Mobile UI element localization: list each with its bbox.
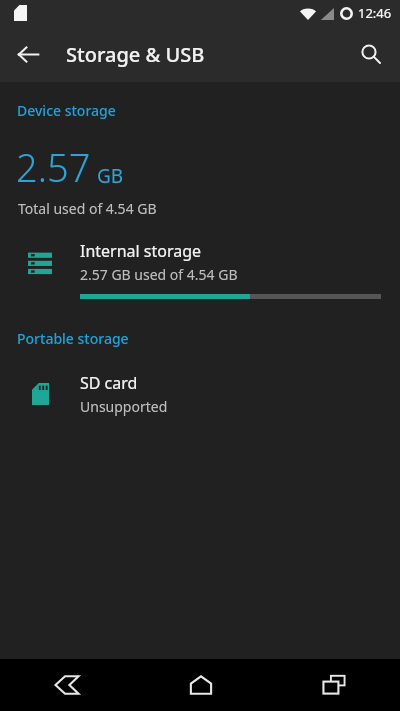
staticText: Unsupported xyxy=(80,397,168,416)
staticText: GB xyxy=(97,163,124,189)
staticText: Device storage xyxy=(17,101,116,120)
staticText: Internal storage xyxy=(80,240,202,262)
staticText: SD card xyxy=(80,372,138,394)
staticText: Portable storage xyxy=(17,329,129,348)
staticText: Total used of 4.54 GB xyxy=(18,199,157,218)
button[interactable]: SD card xyxy=(0,372,400,416)
button[interactable]: Back xyxy=(0,659,134,711)
button[interactable]: Search xyxy=(350,33,392,75)
staticText: 2.57 GB used of 4.54 GB xyxy=(80,265,238,284)
button[interactable]: Home xyxy=(134,659,267,711)
staticText: 12:46 xyxy=(358,4,392,22)
staticText: 2.57 xyxy=(16,141,91,193)
button[interactable]: Recent apps xyxy=(267,659,400,711)
button[interactable]: Back xyxy=(8,34,48,74)
staticText: Storage & USB xyxy=(66,41,205,68)
button[interactable]: Internal storage xyxy=(0,240,400,299)
